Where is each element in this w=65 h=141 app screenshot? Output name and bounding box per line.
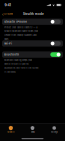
staticText: Wi-Fi (4, 42, 12, 45)
staticText: Bluetooth (4, 53, 19, 56)
button[interactable]: Shield (22, 126, 43, 133)
staticText: Discover (4, 13, 13, 15)
staticText: Protect your device identity — a stealth… (4, 26, 38, 40)
button[interactable]: Stealth (0, 126, 22, 133)
staticText: Shield (30, 131, 34, 133)
staticText: ‹ (2, 11, 4, 17)
button[interactable]: Settings (43, 126, 65, 133)
button[interactable]: Bluetooth (2, 51, 63, 58)
staticText: Bluetooth sharing keeps your device visi… (4, 59, 38, 73)
staticText: 9:41 (4, 3, 10, 7)
button[interactable]: Wi-Fi (2, 40, 63, 47)
staticText: Stealth (7, 131, 14, 133)
button[interactable]: ‹ (0, 10, 13, 18)
button[interactable]: Stealth iPhone (2, 19, 63, 25)
staticText: Stealth iPhone (4, 20, 27, 23)
staticText: Stealth mode (23, 12, 44, 16)
staticText: Settings (51, 131, 58, 133)
